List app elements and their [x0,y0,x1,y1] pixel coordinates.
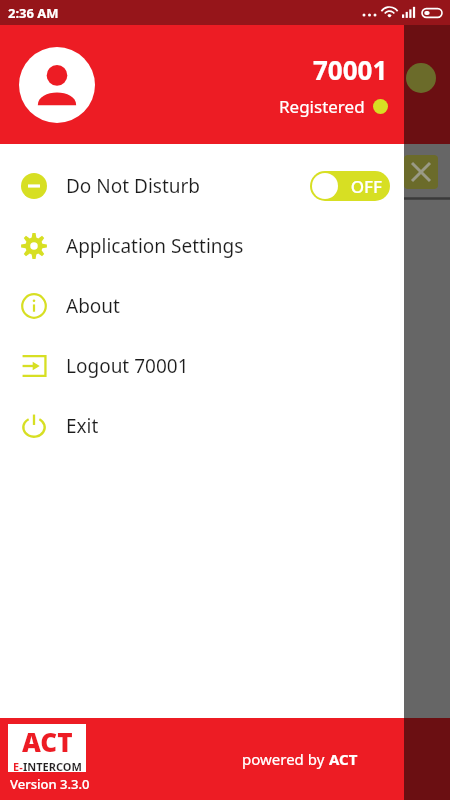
button[interactable]: Application Settings [0,216,404,276]
staticText: ACT [22,724,73,759]
staticText: About [66,293,120,319]
staticText: 70001 [313,52,388,87]
staticText: INTER [23,759,56,772]
staticText: powered by [242,749,329,769]
staticText: 2:36 AM [8,4,59,22]
staticText: Application Settings [66,233,244,259]
staticText: Logout 70001 [66,353,189,379]
staticText: ACT [329,749,358,769]
staticText: Exit [66,413,99,439]
staticText: COM [56,759,82,772]
button[interactable]: Exit [0,396,404,456]
button[interactable]: Do Not Disturb [0,156,404,216]
button[interactable]: Do Not Disturb toggle, OFF [310,171,390,201]
staticText: E- [13,759,23,772]
staticText: Registered [279,95,365,118]
staticText: OFF [310,175,382,198]
staticText: Do Not Disturb [66,173,201,199]
button[interactable]: About [0,276,404,336]
staticText: Version 3.3.0 [10,775,90,793]
button[interactable]: Logout 70001 [0,336,404,396]
